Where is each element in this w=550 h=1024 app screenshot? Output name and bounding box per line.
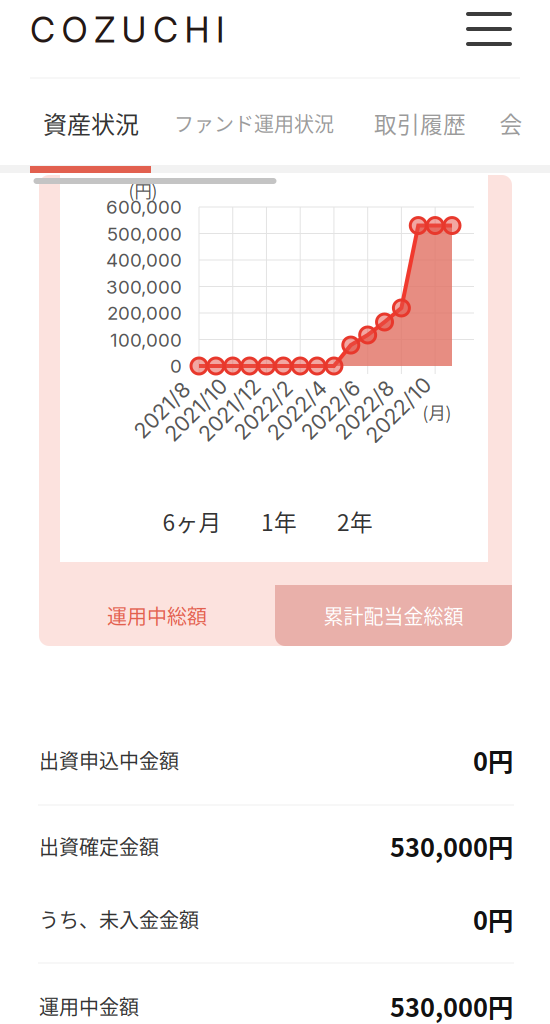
staticText: 0 (170, 355, 182, 377)
staticText: 530,000円 (390, 988, 513, 1024)
staticText: 出資確定金額 (39, 831, 159, 860)
staticText: (円) (128, 177, 157, 203)
staticText: 2022/4 (260, 397, 334, 423)
staticText: 200,000 (107, 302, 182, 324)
staticText: 2022/6 (294, 397, 367, 423)
staticText: 資産状況 (43, 106, 139, 140)
staticText: うち、未入金金額 (39, 904, 199, 933)
button[interactable]: 運用中総額 (39, 585, 275, 646)
button[interactable]: ファンド運用状況 (164, 95, 344, 151)
button[interactable]: 累計配当金総額 (275, 585, 512, 646)
staticText: 2年 (337, 505, 373, 537)
staticText: 6ヶ月 (162, 505, 221, 537)
staticText: 運用中総額 (107, 601, 207, 630)
staticText: 0円 (473, 742, 513, 778)
staticText: 累計配当金総額 (323, 601, 463, 630)
staticText: 1年 (261, 505, 297, 537)
button[interactable]: Menu (452, 0, 526, 58)
button[interactable]: 資産状況 (25, 95, 157, 151)
staticText: 0円 (473, 901, 513, 937)
staticText: 運用中金額 (39, 991, 139, 1020)
staticText: 2021/12 (190, 397, 268, 423)
staticText: 530,000円 (390, 828, 513, 864)
staticText: 2022/2 (227, 397, 300, 423)
staticText: 出資申込中金額 (39, 745, 179, 774)
staticText: 300,000 (106, 276, 182, 298)
staticText: 会 (499, 107, 522, 139)
staticText: 600,000 (106, 196, 182, 218)
staticText: 取引履歴 (374, 107, 466, 139)
staticText: COZUCHI (30, 9, 224, 51)
staticText: 400,000 (106, 249, 182, 271)
staticText: 500,000 (107, 223, 182, 245)
staticText: (月) (422, 399, 451, 425)
staticText: 2021/8 (127, 397, 196, 423)
button[interactable]: 2年 (317, 500, 393, 542)
staticText: 2022/10 (357, 397, 439, 423)
staticText: 2021/10 (157, 397, 235, 423)
staticText: ファンド運用状況 (174, 108, 334, 137)
staticText: 100,000 (110, 329, 182, 351)
button[interactable]: 取引履歴 (364, 95, 476, 151)
button[interactable]: 会 (491, 95, 531, 151)
button[interactable]: 6ヶ月 (143, 500, 241, 542)
staticText: 2022/8 (328, 397, 401, 423)
button[interactable]: 1年 (241, 500, 317, 542)
